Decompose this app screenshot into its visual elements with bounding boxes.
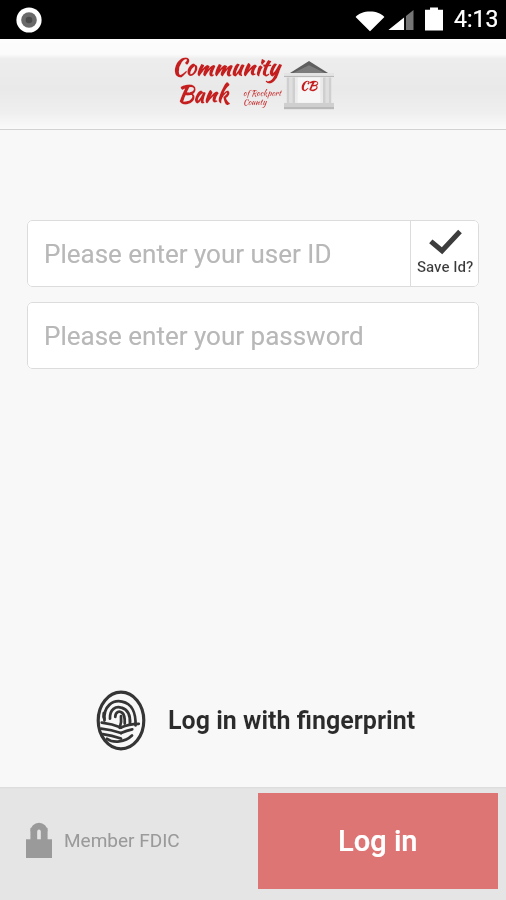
button[interactable]: Please enter your user ID xyxy=(27,220,410,287)
button[interactable]: Log in with fingerprint xyxy=(89,690,418,751)
staticText: Member FDIC xyxy=(64,829,180,851)
staticText: Please enter your user ID xyxy=(44,239,332,269)
staticText: of Rockport County xyxy=(243,87,282,108)
button[interactable]: Save Id? xyxy=(411,220,479,287)
staticText: Please enter your password xyxy=(44,321,364,351)
staticText: Log in xyxy=(338,824,418,858)
staticText: Bank xyxy=(177,77,229,110)
button[interactable]: Please enter your password xyxy=(27,302,479,369)
staticText: CB xyxy=(300,76,318,95)
button[interactable]: Log in xyxy=(258,793,498,889)
staticText: Save Id? xyxy=(417,258,474,276)
staticText: Community xyxy=(172,50,280,83)
button[interactable]: Member FDIC xyxy=(26,822,180,858)
staticText: 4:13 xyxy=(454,6,499,33)
staticText: Log in with fingerprint xyxy=(168,706,416,735)
